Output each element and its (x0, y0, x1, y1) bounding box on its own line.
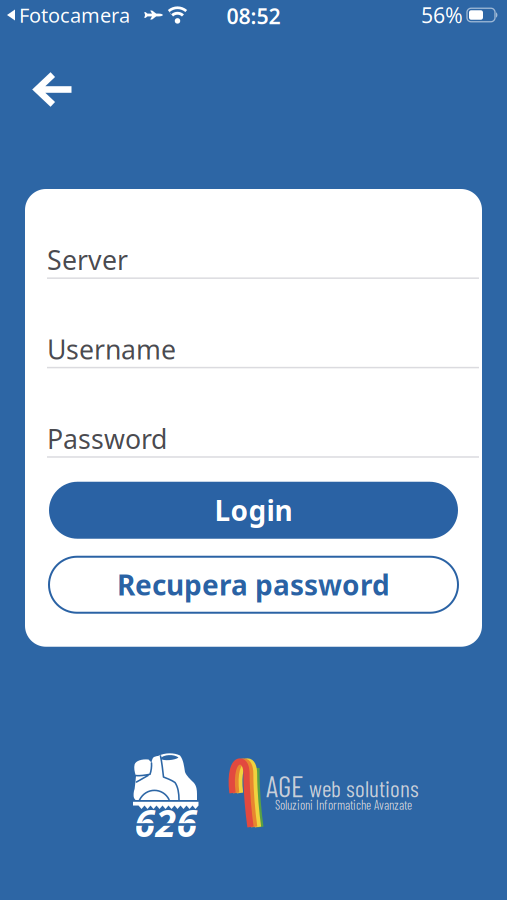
button[interactable]: Login (49, 482, 458, 539)
staticText: Fotocamera (19, 2, 130, 28)
staticText: Login (214, 492, 292, 529)
staticText: Recupera password (117, 566, 390, 603)
button[interactable]: Fotocamera (7, 2, 130, 28)
button[interactable]: Username (25, 331, 482, 368)
staticText: Username (47, 331, 176, 367)
staticText: AGE (266, 768, 304, 803)
staticText: Soluzioni Informatiche Avanzate (275, 797, 412, 812)
staticText: 626 (134, 798, 197, 847)
staticText: web solutions (309, 774, 419, 802)
staticText: 56% (421, 1, 463, 29)
button[interactable]: Back (33, 72, 73, 107)
staticText: 08:52 (226, 2, 280, 30)
button[interactable]: Server (25, 242, 482, 279)
staticText: Password (47, 421, 167, 456)
staticText: Server (47, 242, 128, 277)
button[interactable]: Password (25, 421, 482, 458)
button[interactable]: Recupera password (49, 557, 458, 613)
